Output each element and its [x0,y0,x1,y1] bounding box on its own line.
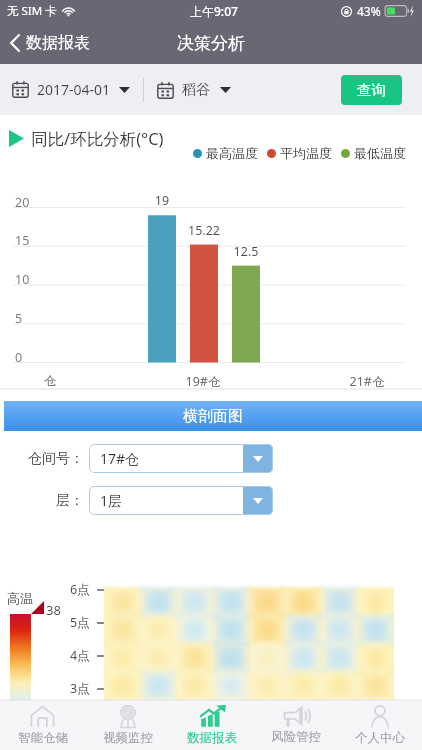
staticText: 38 [46,601,61,619]
staticText: 15 [15,232,39,249]
staticText: 智能仓储 [18,730,68,746]
staticText: 同比/环比分析(°C) [31,127,164,150]
staticText: 6点 [70,581,90,598]
staticText: 查询 [357,81,386,99]
staticText: 仓 [30,373,70,389]
other: Back [10,34,20,52]
button[interactable]: 视频监控 [85,700,170,750]
staticText: 21#仓 [342,373,392,390]
staticText: 上午9:07 [190,3,238,19]
staticText: 4点 [70,647,90,664]
staticText: 数据报表 [26,33,90,53]
button[interactable]: 1层 [89,486,273,515]
staticText: 稻谷 [182,81,210,99]
staticText: 最低温度 [354,145,406,161]
staticText: 10 [15,271,39,288]
staticText: 12.5 [221,243,271,260]
staticText: 15.22 [179,222,229,239]
staticText: 2017-04-01 [37,80,111,99]
staticText: 数据报表 [187,730,237,746]
staticText: 19#仓 [178,373,228,390]
button[interactable]: Back [6,28,94,58]
staticText: 无 SIM 卡 [7,3,57,19]
button[interactable]: 数据报表 [170,700,254,750]
staticText: 最高温度 [206,145,258,161]
staticText: 个人中心 [355,730,405,746]
staticText: 横剖面图 [183,407,243,426]
staticText: 平均温度 [280,145,332,161]
staticText: 风险管控 [271,729,321,745]
button[interactable]: 2017-04-01 [8,74,134,105]
staticText: 20 [15,194,39,211]
button[interactable]: 风险管控 [254,700,338,750]
button[interactable]: 稻谷 [153,75,235,105]
staticText: 0 [15,349,39,366]
staticText: 层： [56,492,84,510]
staticText: 仓间号： [28,450,84,468]
staticText: 5 [15,310,39,327]
button[interactable]: 个人中心 [338,700,422,750]
staticText: 17#仓 [100,449,140,468]
staticText: 19 [137,192,187,209]
button[interactable]: 查询 [341,75,402,105]
staticText: 43% [357,3,381,19]
staticText: 视频监控 [103,730,153,746]
button[interactable]: 智能仓储 [0,700,85,750]
staticText: 决策分析 [177,33,245,54]
staticText: 5点 [70,614,90,631]
staticText: 1层 [100,491,123,510]
staticText: 高温 [7,590,33,606]
button[interactable]: 17#仓 [89,444,273,473]
staticText: 3点 [70,680,90,697]
